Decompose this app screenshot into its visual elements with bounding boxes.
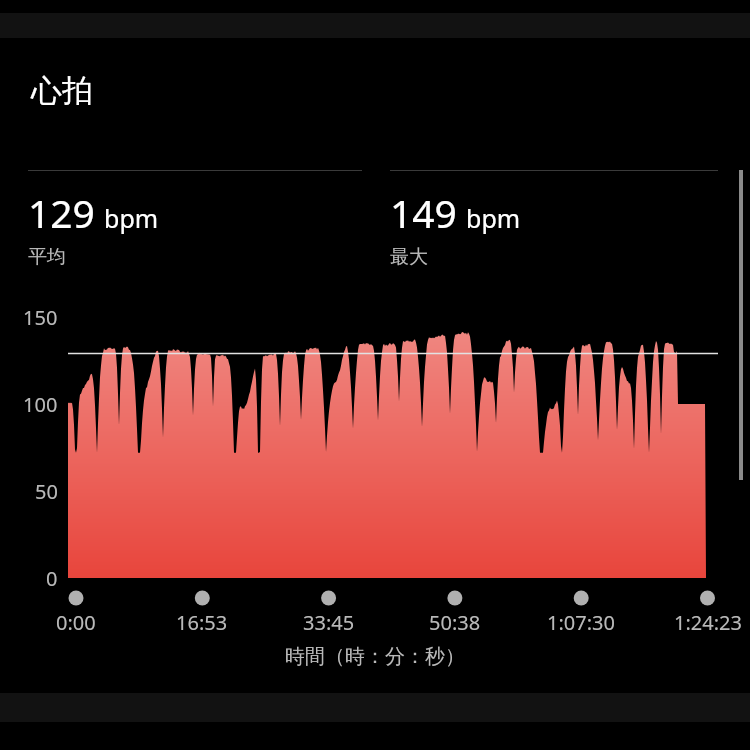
staticText: 時間（時：分：秒）: [285, 644, 465, 669]
staticText: 1:24:23: [674, 609, 742, 636]
staticText: 50:38: [429, 609, 481, 636]
staticText: 150: [23, 304, 58, 331]
button[interactable]: 129: [28, 170, 362, 269]
button[interactable]: 149: [390, 170, 718, 269]
staticText: 149: [390, 186, 457, 239]
staticText: 50: [35, 478, 58, 505]
staticText: 平均: [28, 245, 66, 269]
staticText: 129: [28, 186, 95, 239]
staticText: 0:00: [56, 609, 96, 636]
button[interactable]: Heart rate chart: [0, 0, 750, 750]
staticText: 100: [23, 391, 58, 418]
staticText: 16:53: [176, 609, 228, 636]
staticText: bpm: [104, 201, 159, 235]
staticText: 0: [46, 565, 58, 592]
staticText: 最大: [390, 245, 428, 269]
staticText: 心拍: [31, 71, 93, 110]
staticText: 33:45: [303, 609, 355, 636]
staticText: bpm: [466, 201, 521, 235]
staticText: 1:07:30: [547, 609, 615, 636]
